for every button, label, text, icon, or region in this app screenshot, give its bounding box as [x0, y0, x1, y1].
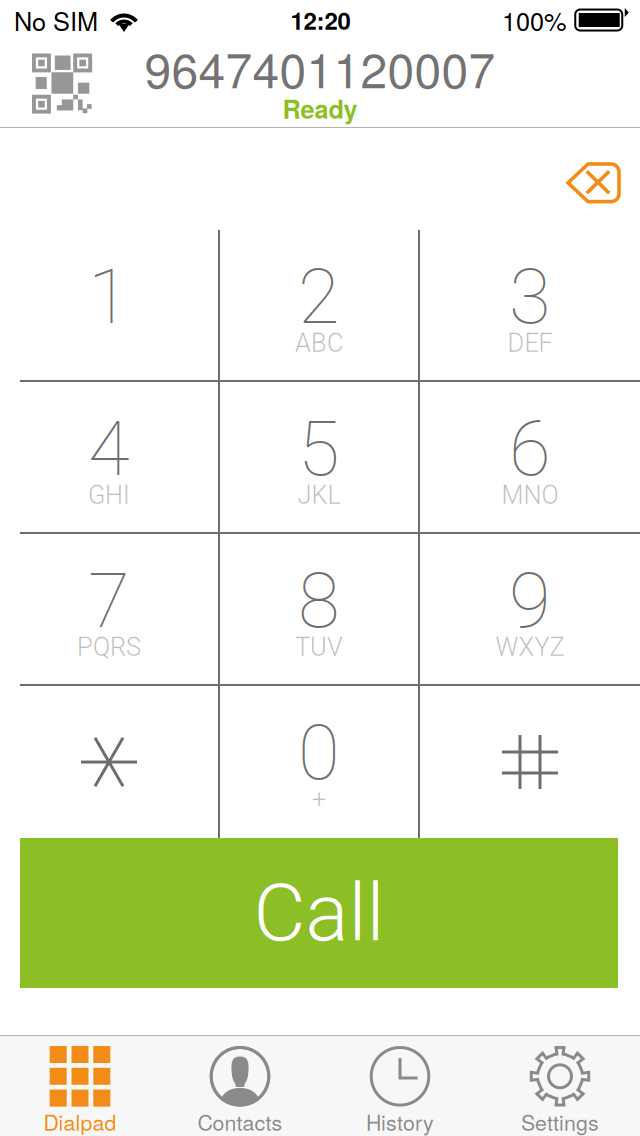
- staticText: GHI: [88, 480, 130, 510]
- staticText: JKL: [297, 480, 340, 510]
- button[interactable]: 0: [220, 686, 418, 838]
- button[interactable]: 8: [220, 534, 418, 684]
- staticText: 8: [298, 556, 340, 646]
- button[interactable]: Dialpad: [0, 1036, 160, 1136]
- staticText: 5: [298, 404, 340, 494]
- button[interactable]: 2: [220, 230, 418, 380]
- button[interactable]: 7: [0, 534, 218, 684]
- button[interactable]: Pound key: [420, 686, 640, 838]
- staticText: 2: [298, 252, 340, 342]
- button[interactable]: Call: [20, 838, 618, 988]
- staticText: Call: [253, 866, 384, 960]
- staticText: ABC: [295, 328, 343, 358]
- button[interactable]: Scan QR code: [32, 53, 92, 113]
- button[interactable]: 4: [0, 382, 218, 532]
- button[interactable]: History: [320, 1036, 480, 1136]
- staticText: 7: [88, 556, 130, 646]
- button[interactable]: 6: [420, 382, 640, 532]
- button[interactable]: 3: [420, 230, 640, 380]
- staticText: WXYZ: [495, 632, 564, 662]
- button[interactable]: 9: [420, 534, 640, 684]
- staticText: Contacts: [197, 1106, 282, 1136]
- staticText: TUV: [295, 632, 343, 662]
- staticText: 9: [509, 556, 551, 646]
- staticText: 100%: [502, 2, 567, 38]
- staticText: 3: [509, 252, 551, 342]
- button[interactable]: Settings: [480, 1036, 640, 1136]
- staticText: 1: [88, 252, 130, 342]
- staticText: No SIM: [14, 2, 98, 38]
- staticText: Ready: [282, 90, 357, 127]
- staticText: 12:20: [290, 3, 350, 37]
- staticText: Dialpad: [43, 1106, 116, 1136]
- button[interactable]: 5: [220, 382, 418, 532]
- staticText: 4: [88, 404, 130, 494]
- staticText: DEF: [507, 328, 552, 358]
- staticText: PQRS: [77, 632, 141, 662]
- button[interactable]: Star key: [0, 686, 218, 838]
- staticText: Settings: [521, 1106, 599, 1136]
- staticText: 6: [509, 404, 551, 494]
- staticText: History: [366, 1106, 434, 1136]
- button[interactable]: Delete: [566, 154, 621, 204]
- button[interactable]: Contacts: [160, 1036, 320, 1136]
- staticText: MNO: [501, 480, 558, 510]
- staticText: 9647401120007: [144, 33, 495, 102]
- button[interactable]: 1: [0, 230, 218, 380]
- staticText: +: [312, 784, 326, 814]
- staticText: 0: [298, 708, 340, 798]
